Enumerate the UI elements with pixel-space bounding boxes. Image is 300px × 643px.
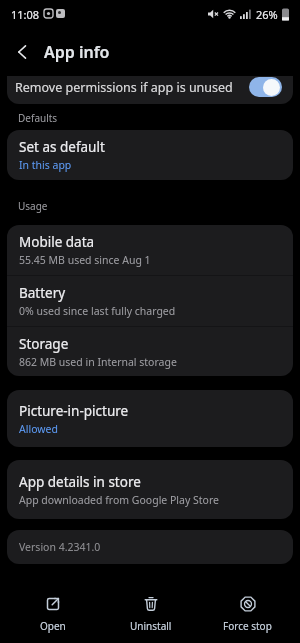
staticText: Defaults	[18, 111, 58, 125]
staticText: Remove permissions if app is unused	[15, 79, 233, 96]
button[interactable]: Force stop	[199, 596, 296, 633]
button[interactable]: Mobile data	[7, 225, 293, 376]
staticText: Usage	[18, 199, 48, 213]
button[interactable]: Picture-in-picture	[7, 390, 293, 447]
staticText: 26%	[256, 7, 278, 22]
staticText: 0% used since last fully charged	[19, 304, 176, 318]
staticText: Allowed	[19, 422, 58, 436]
staticText: Set as default	[19, 138, 105, 156]
button[interactable]	[0, 28, 44, 76]
button[interactable]: Open	[4, 596, 102, 633]
button[interactable]: Set as default	[7, 130, 293, 180]
staticText: App details in store	[19, 473, 141, 491]
staticText: 55.45 MB used since Aug 1	[19, 253, 151, 267]
staticText: Picture-in-picture	[19, 402, 129, 420]
staticText: Battery	[19, 284, 66, 302]
staticText: Uninstall	[130, 619, 172, 633]
staticText: Force stop	[223, 619, 272, 633]
button[interactable]: Version 4.2341.0	[7, 530, 293, 564]
button[interactable]: Uninstall	[102, 596, 199, 633]
button[interactable]: App details in store	[7, 460, 293, 519]
staticText: 11:08	[11, 7, 40, 22]
staticText: Open	[40, 619, 66, 633]
staticText: App downloaded from Google Play Store	[19, 493, 220, 507]
button[interactable]: Remove permissions if app is unused	[7, 76, 293, 104]
staticText: Version 4.2341.0	[19, 540, 101, 554]
staticText: In this app	[19, 158, 72, 172]
staticText: Mobile data	[19, 233, 95, 251]
staticText: 862 MB used in Internal storage	[19, 355, 177, 369]
staticText: App info	[44, 41, 110, 63]
staticText: Storage	[19, 335, 69, 353]
